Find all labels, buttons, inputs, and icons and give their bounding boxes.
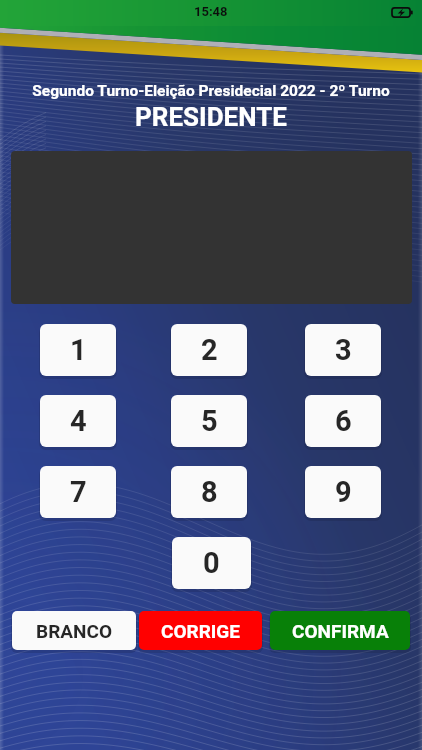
staticText: 9: [335, 475, 352, 509]
button[interactable]: CONFIRMA: [270, 611, 410, 650]
staticText: 6: [335, 404, 352, 438]
button[interactable]: 2: [171, 324, 247, 376]
staticText: 3: [335, 333, 352, 367]
staticText: 4: [70, 404, 87, 438]
button[interactable]: 7: [40, 466, 116, 518]
button[interactable]: 4: [40, 395, 116, 447]
button[interactable]: 3: [305, 324, 381, 376]
button[interactable]: CORRIGE: [139, 611, 262, 650]
button[interactable]: 8: [171, 466, 247, 518]
staticText: CORRIGE: [161, 620, 240, 642]
staticText: 0: [203, 546, 220, 580]
button[interactable]: BRANCO: [12, 611, 136, 650]
staticText: 5: [201, 404, 218, 438]
staticText: PRESIDENTE: [0, 102, 422, 132]
staticText: CONFIRMA: [292, 620, 389, 642]
button[interactable]: 5: [171, 395, 247, 447]
button[interactable]: 1: [40, 324, 116, 376]
staticText: 7: [70, 475, 87, 509]
staticText: Segundo Turno-Eleição Presidecial 2022 -…: [0, 82, 422, 100]
staticText: 2: [201, 333, 218, 367]
staticText: BRANCO: [36, 620, 113, 642]
staticText: 8: [201, 475, 218, 509]
staticText: 15:48: [194, 4, 228, 19]
other: Battery charging: [392, 6, 413, 19]
staticText: 1: [70, 333, 87, 367]
button[interactable]: 6: [305, 395, 381, 447]
button[interactable]: 0: [172, 537, 251, 589]
button[interactable]: 9: [305, 466, 381, 518]
